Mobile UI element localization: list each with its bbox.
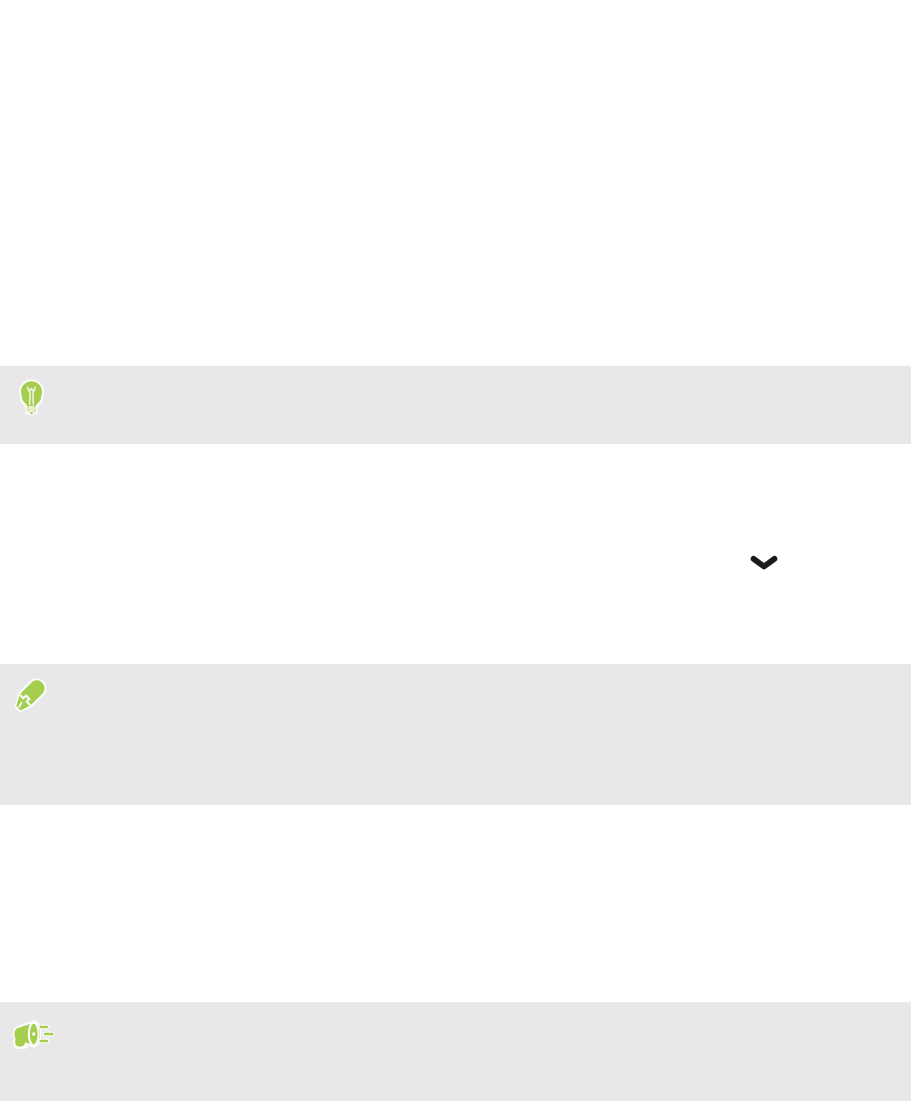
button[interactable]: Announcements xyxy=(10,1013,52,1055)
button[interactable]: Edit xyxy=(0,664,911,805)
button[interactable]: Tips xyxy=(13,379,50,416)
button[interactable]: Tips xyxy=(0,366,911,444)
button[interactable]: Announcements xyxy=(0,1002,911,1101)
button[interactable]: Edit xyxy=(11,676,49,714)
button[interactable]: Expand xyxy=(746,544,782,580)
